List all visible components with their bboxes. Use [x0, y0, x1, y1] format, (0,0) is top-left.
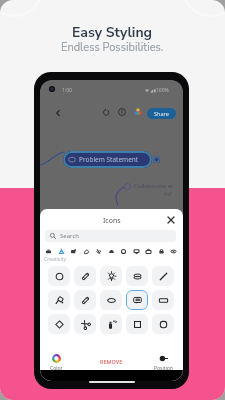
button[interactable]: Shape 5 [152, 266, 174, 286]
button[interactable]: Category 10 [157, 247, 166, 256]
button[interactable]: Category 5 [94, 247, 103, 256]
button[interactable]: Color [50, 354, 63, 372]
button[interactable]: Category 9 [144, 247, 153, 256]
button[interactable]: Shape 11 [48, 314, 70, 334]
staticText: 1:00 [62, 87, 72, 94]
button[interactable]: Category 4 [82, 247, 91, 256]
button[interactable]: Category 3 [69, 247, 78, 256]
button[interactable]: Shape 1 [48, 266, 70, 286]
button[interactable]: Category 6 [107, 247, 116, 256]
staticText: Endless Possibilities. [61, 40, 164, 55]
button[interactable]: Category 8 [132, 247, 141, 256]
staticText: 100% [156, 87, 169, 94]
button[interactable]: Shape 14 [126, 314, 148, 334]
button[interactable]: Position [154, 354, 173, 372]
staticText: REMOVE [100, 358, 123, 365]
staticText: Easy Styling [72, 23, 153, 42]
button[interactable]: Styles [130, 104, 146, 120]
staticText: Creativity [44, 256, 67, 263]
button[interactable]: Shape 6 [48, 290, 70, 310]
button[interactable]: Close [164, 213, 177, 226]
staticText: inf [164, 190, 172, 198]
button[interactable]: Shape 13 [100, 314, 122, 334]
button[interactable]: Shape 7 [74, 290, 96, 310]
button[interactable]: Shape 15 [152, 314, 174, 334]
button[interactable]: REMOVE [100, 358, 123, 365]
staticText: Problem Statement [79, 155, 139, 164]
staticText: Share [154, 110, 169, 117]
button[interactable]: Undo [98, 104, 114, 120]
button[interactable]: Shape 9 [126, 290, 148, 310]
button[interactable]: Category 2 [57, 247, 66, 256]
button[interactable]: Category 1 [44, 247, 53, 256]
button[interactable]: Shape 4 [126, 266, 148, 286]
staticText: Search [60, 232, 79, 240]
button[interactable]: Shape 3 [100, 266, 122, 286]
staticText: Color [50, 365, 63, 372]
button[interactable]: Share [147, 108, 176, 119]
button[interactable]: Category 11 [169, 247, 178, 256]
button[interactable]: Problem Statement [63, 151, 152, 168]
staticText: Icons [103, 216, 121, 226]
button[interactable]: Shape 2 [74, 266, 96, 286]
button[interactable]: Shape 10 [152, 290, 174, 310]
button[interactable]: Shape 12 [74, 314, 96, 334]
button[interactable]: Category 7 [119, 247, 128, 256]
button[interactable]: Shape 8 [100, 290, 122, 310]
button[interactable]: Back [49, 104, 67, 122]
button[interactable]: Info [114, 104, 130, 120]
staticText: Collaborate w [134, 182, 173, 190]
button[interactable]: Search [45, 230, 176, 242]
staticText: Position [154, 365, 173, 372]
